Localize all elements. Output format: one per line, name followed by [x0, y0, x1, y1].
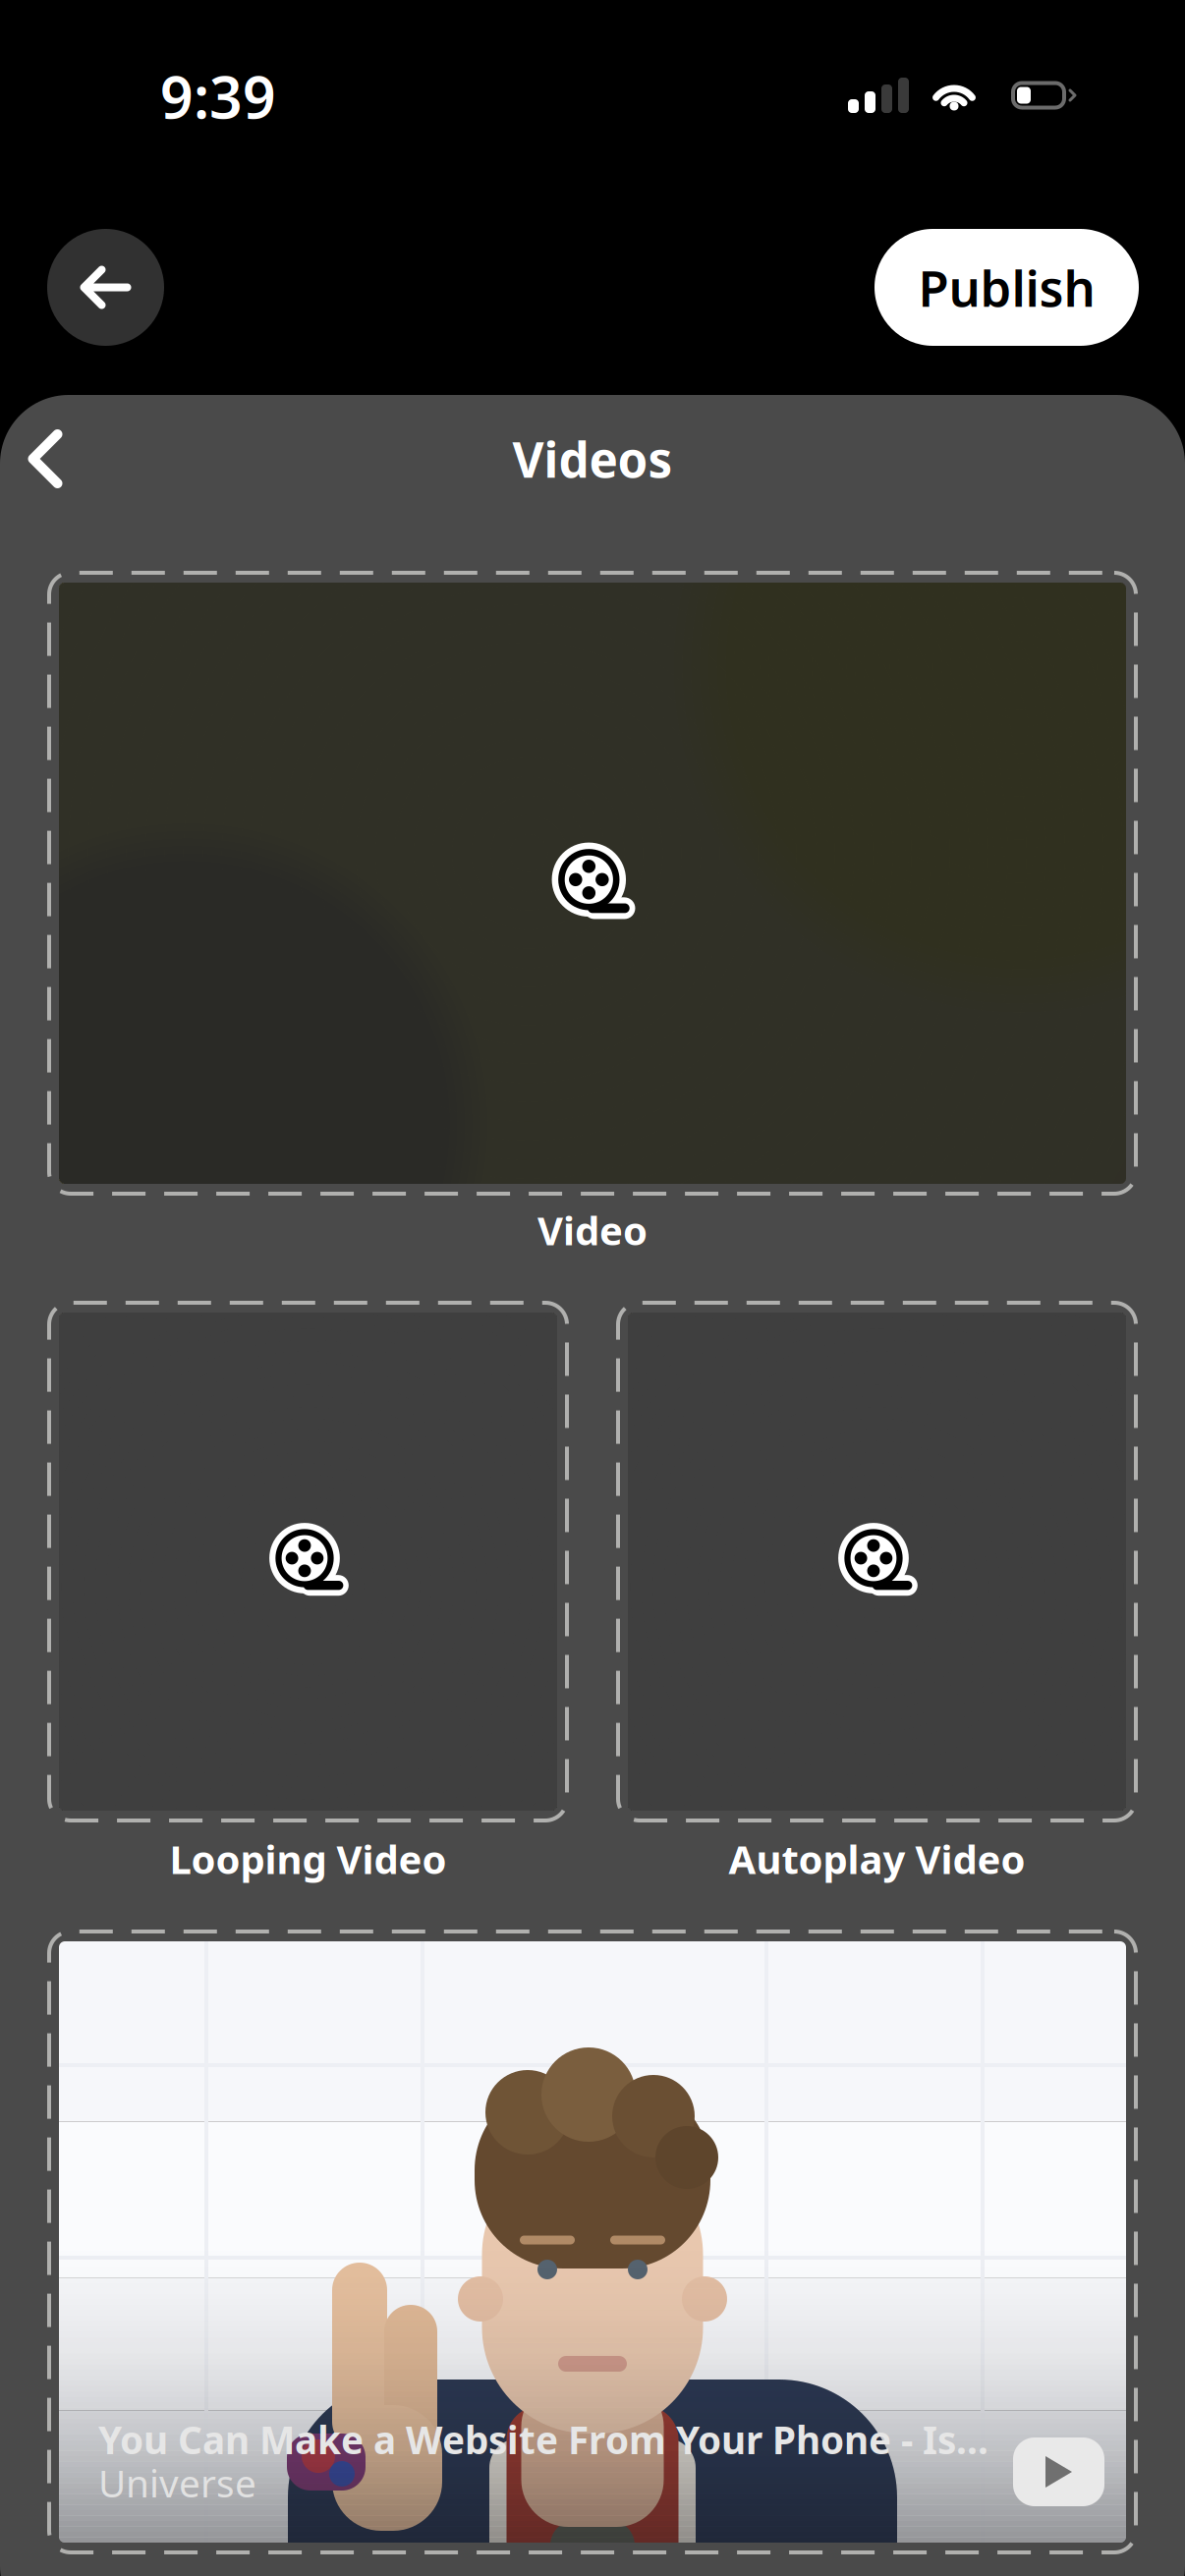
staticText: Video — [537, 1204, 648, 1256]
button[interactable]: Publish — [875, 229, 1139, 346]
staticText: 9:39 — [160, 58, 276, 134]
button[interactable]: Back — [47, 229, 164, 346]
staticText: You Can Make a Website From Your Phone -… — [98, 2414, 988, 2465]
button[interactable]: Back — [7, 410, 83, 508]
button[interactable]: Add Autoplay Video — [616, 1301, 1138, 1822]
button[interactable]: Add Looping Video — [47, 1301, 569, 1822]
staticText: Looping Video — [169, 1833, 447, 1885]
button[interactable]: Add Video — [47, 571, 1138, 1196]
button[interactable]: Add YouTube Video — [47, 1930, 1138, 2554]
staticText: Universe — [98, 2457, 256, 2508]
staticText: Videos — [512, 427, 673, 491]
staticText: Publish — [918, 254, 1095, 320]
staticText: Autoplay Video — [729, 1833, 1025, 1885]
